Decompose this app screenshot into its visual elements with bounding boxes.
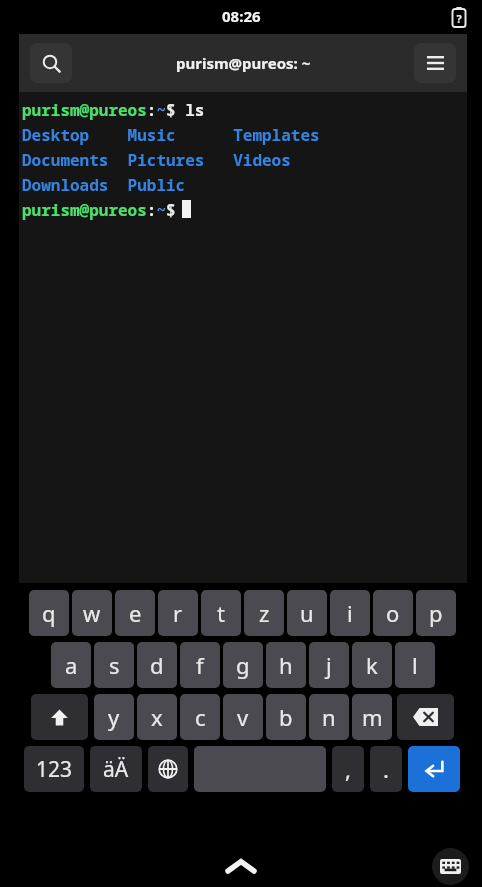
button[interactable]: Menu	[414, 43, 456, 83]
staticText: v	[237, 702, 249, 732]
button[interactable]: x	[137, 694, 177, 740]
button[interactable]: d	[137, 642, 177, 688]
button[interactable]: äÄ	[90, 746, 142, 792]
staticText: purism@pureos:~$	[22, 199, 176, 221]
button[interactable]: a	[51, 642, 91, 688]
staticText: b	[279, 702, 293, 732]
staticText: m	[362, 702, 383, 732]
button[interactable]: u	[287, 590, 327, 636]
staticText: x	[151, 702, 163, 732]
button[interactable]: b	[266, 694, 306, 740]
staticText: q	[42, 598, 56, 628]
button[interactable]: y	[94, 694, 134, 740]
staticText: .	[383, 754, 389, 784]
staticText: d	[150, 650, 164, 680]
button[interactable]: r	[158, 590, 198, 636]
button[interactable]: Expand	[213, 849, 269, 883]
button[interactable]: 123	[24, 746, 84, 792]
button[interactable]: Backspace	[397, 694, 454, 740]
button[interactable]: k	[352, 642, 392, 688]
staticText: Documents Pictures Videos	[22, 149, 291, 171]
staticText: y	[108, 702, 120, 732]
button[interactable]: Enter	[408, 746, 460, 792]
staticText: 123	[36, 755, 73, 784]
staticText: g	[236, 650, 250, 680]
button[interactable]: s	[94, 642, 134, 688]
button[interactable]: Hide keyboard	[432, 848, 469, 885]
button[interactable]: .	[370, 746, 402, 792]
staticText: äÄ	[103, 755, 129, 784]
button[interactable]: v	[223, 694, 263, 740]
button[interactable]: e	[115, 590, 155, 636]
staticText: Desktop Music Templates	[22, 124, 320, 146]
staticText: i	[347, 598, 353, 628]
button[interactable]: c	[180, 694, 220, 740]
staticText: 08:26	[222, 6, 261, 26]
button[interactable]: p	[416, 590, 456, 636]
button[interactable]: Search	[30, 43, 72, 83]
staticText: purism@pureos: ~	[176, 53, 311, 73]
button[interactable]: f	[180, 642, 220, 688]
button[interactable]: g	[223, 642, 263, 688]
button[interactable]: ,	[332, 746, 364, 792]
staticText: ?	[452, 11, 466, 26]
staticText: j	[326, 650, 332, 680]
staticText: t	[217, 598, 225, 628]
button[interactable]: m	[352, 694, 392, 740]
button[interactable]: Shift	[31, 694, 88, 740]
staticText: s	[109, 650, 120, 680]
button[interactable]: w	[72, 590, 112, 636]
staticText: o	[386, 598, 400, 628]
button[interactable]: l	[395, 642, 435, 688]
button[interactable]: n	[309, 694, 349, 740]
button[interactable]: o	[373, 590, 413, 636]
staticText: e	[129, 598, 142, 628]
staticText: u	[300, 598, 314, 628]
button[interactable]: q	[29, 590, 69, 636]
button[interactable]: t	[201, 590, 241, 636]
button[interactable]: i	[330, 590, 370, 636]
staticText: h	[279, 650, 293, 680]
button[interactable]: Space	[194, 746, 326, 792]
staticText: w	[83, 598, 101, 628]
staticText: ,	[345, 754, 351, 784]
staticText: z	[259, 598, 270, 628]
button[interactable]: z	[244, 590, 284, 636]
button[interactable]: h	[266, 642, 306, 688]
staticText: l	[412, 650, 418, 680]
staticText: n	[322, 702, 336, 732]
staticText: k	[366, 650, 378, 680]
staticText: c	[195, 702, 206, 732]
staticText: f	[196, 650, 204, 680]
button[interactable]: Switch language	[148, 746, 188, 792]
staticText: r	[173, 598, 183, 628]
staticText: p	[429, 598, 443, 628]
staticText: a	[65, 650, 78, 680]
staticText: purism@pureos:~$ ls	[22, 99, 205, 121]
staticText: Downloads Public	[22, 174, 234, 196]
button[interactable]: j	[309, 642, 349, 688]
